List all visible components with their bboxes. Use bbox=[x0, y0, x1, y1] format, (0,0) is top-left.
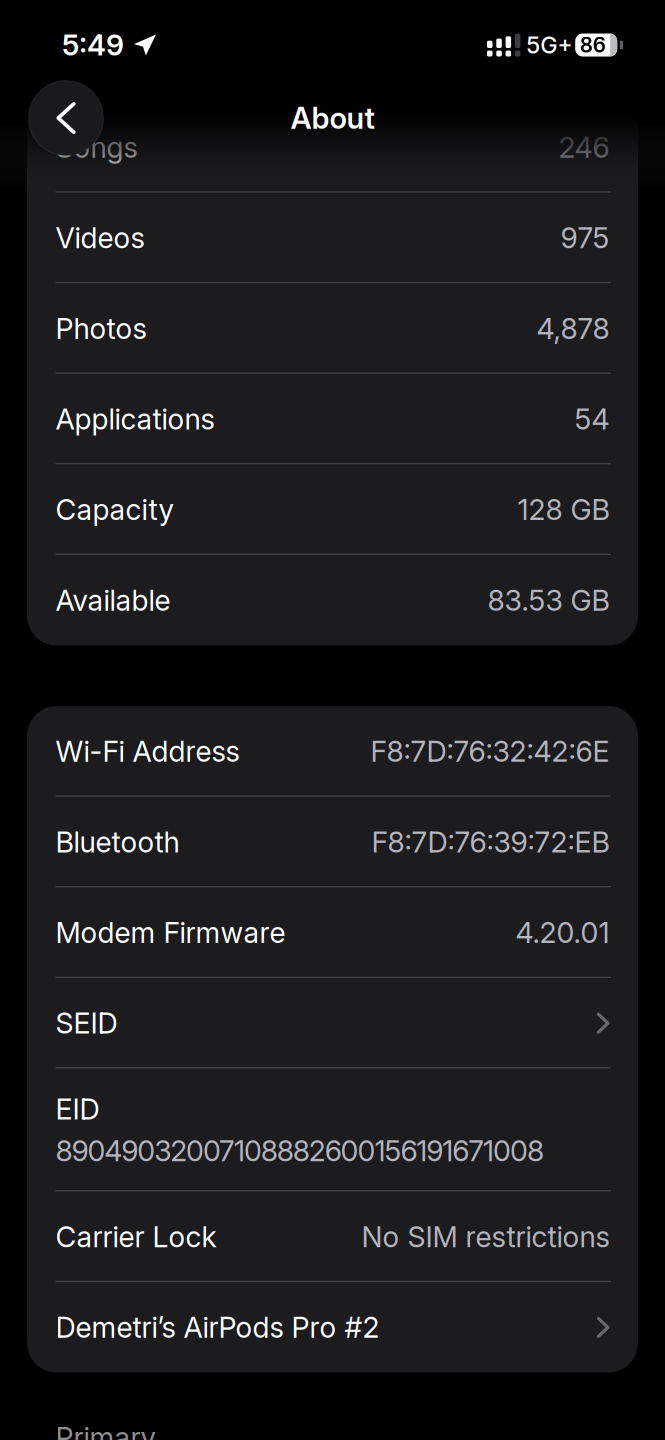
staticText: 83.53 GB bbox=[487, 583, 609, 617]
staticText: SEID bbox=[55, 1006, 117, 1040]
staticText: No SIM restrictions bbox=[361, 1219, 609, 1254]
staticText: 54 bbox=[574, 402, 609, 436]
staticText: Modem Firmware bbox=[55, 915, 285, 950]
staticText: Capacity bbox=[55, 492, 173, 527]
staticText: Available bbox=[55, 583, 170, 617]
staticText: 4.20.01 bbox=[515, 915, 609, 950]
staticText: About bbox=[290, 100, 374, 136]
staticText: Primary bbox=[55, 1420, 155, 1440]
staticText: 4,878 bbox=[536, 311, 609, 346]
staticText: Applications bbox=[55, 402, 214, 436]
staticText: EID bbox=[55, 1092, 99, 1126]
staticText: 5G+ bbox=[526, 31, 572, 59]
button[interactable]: Demetri’s AirPods Pro #2 bbox=[27, 1282, 638, 1373]
button[interactable]: Back bbox=[28, 80, 103, 155]
staticText: F8:7D:76:32:42:6E bbox=[370, 734, 609, 769]
staticText: F8:7D:76:39:72:EB bbox=[371, 825, 609, 859]
staticText: Songs bbox=[55, 130, 137, 164]
staticText: 246 bbox=[558, 130, 609, 164]
staticText: Bluetooth bbox=[55, 825, 179, 859]
staticText: Videos bbox=[55, 221, 144, 255]
button[interactable]: SEID bbox=[27, 978, 638, 1068]
staticText: 86 bbox=[580, 32, 606, 57]
staticText: Demetri’s AirPods Pro #2 bbox=[55, 1310, 379, 1345]
staticText: Wi-Fi Address bbox=[55, 734, 239, 769]
staticText: 89049032007108882600156191671008 bbox=[55, 1133, 544, 1168]
staticText: 128 GB bbox=[517, 492, 609, 527]
staticText: Photos bbox=[55, 311, 146, 346]
staticText: Carrier Lock bbox=[55, 1219, 216, 1254]
staticText: 5:49 bbox=[62, 28, 124, 62]
staticText: 975 bbox=[560, 221, 609, 255]
